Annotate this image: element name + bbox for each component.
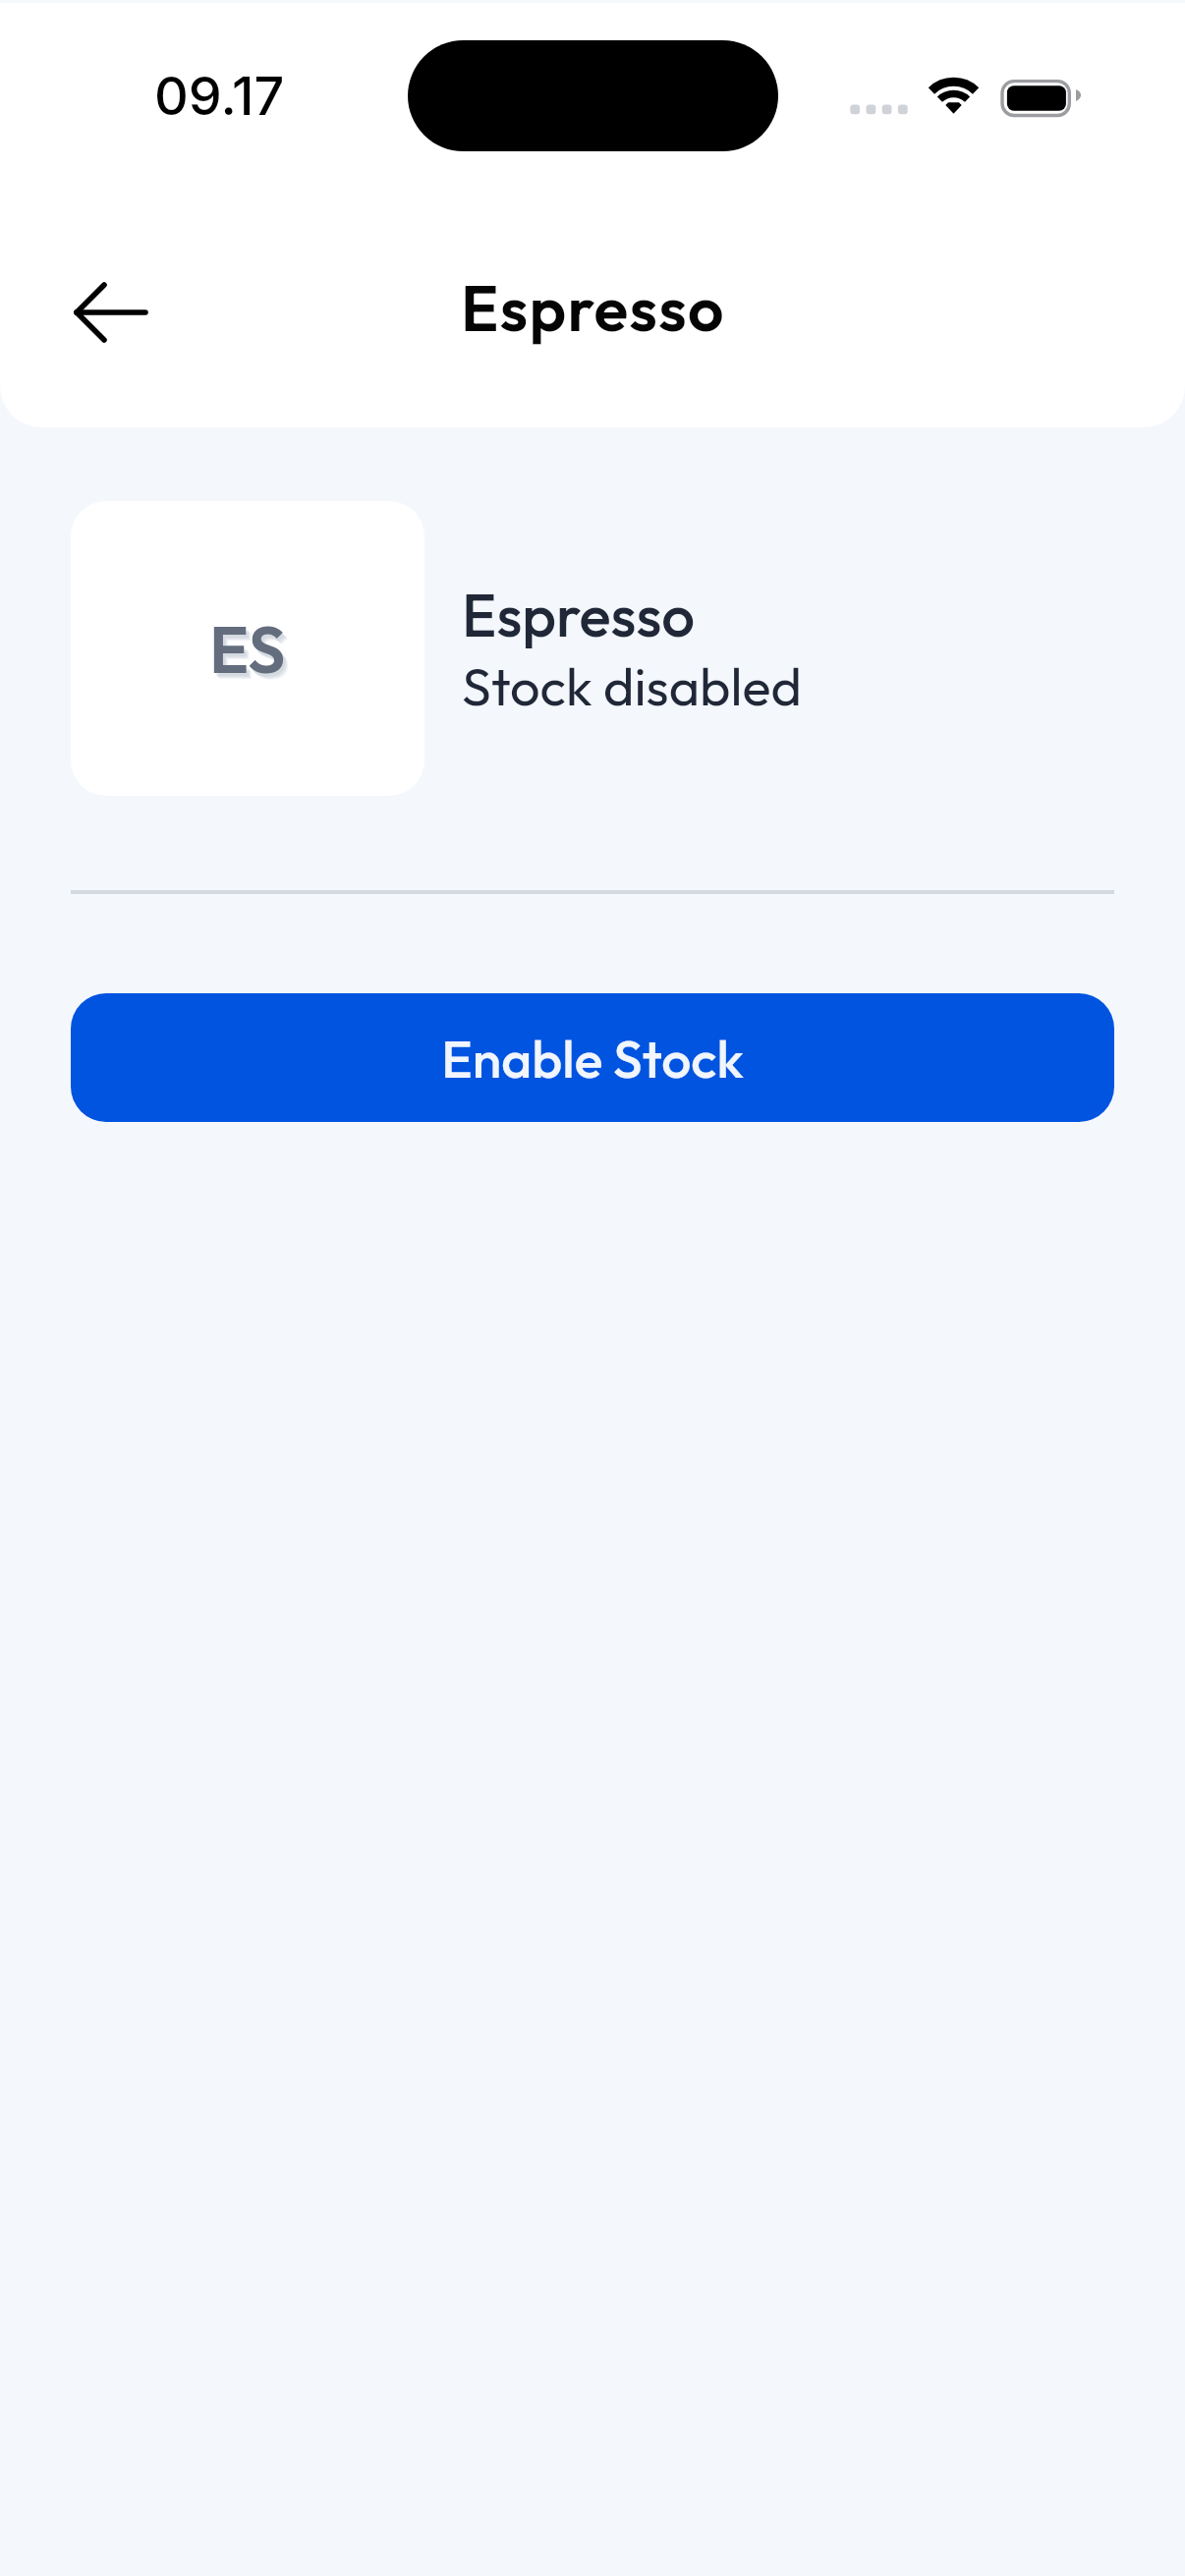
- staticText: ES: [214, 613, 291, 696]
- staticText: 09.17: [154, 64, 285, 128]
- staticText: Stock disabled: [462, 652, 802, 719]
- staticText: Enable Stock: [441, 1025, 744, 1091]
- staticText: ES: [212, 611, 289, 694]
- button[interactable]: ES: [0, 501, 1185, 796]
- staticText: Espresso: [461, 268, 725, 348]
- staticText: Espresso: [462, 578, 695, 652]
- button[interactable]: Enable Stock: [71, 993, 1114, 1122]
- staticText: ES: [211, 610, 288, 693]
- button[interactable]: Back: [64, 265, 158, 360]
- staticText: ES: [209, 607, 286, 690]
- staticText: ES: [213, 612, 290, 695]
